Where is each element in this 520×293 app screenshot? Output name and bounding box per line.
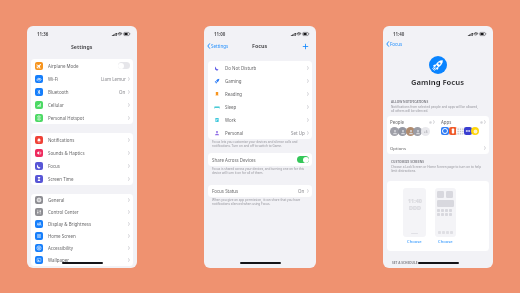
staticText: Airplane Mode (48, 63, 79, 69)
button[interactable]: Bluetooth (31, 85, 133, 98)
staticText: Gaming Focus (411, 77, 465, 87)
button[interactable]: Cellular (31, 98, 133, 111)
staticText: Notifications from selected people and a… (391, 105, 482, 113)
button[interactable]: Focus (31, 159, 133, 172)
staticText: Personal Hotspot (48, 115, 85, 121)
staticText: 11:40 (408, 197, 422, 204)
staticText: Accessibility (48, 245, 74, 251)
staticText: Personal (225, 130, 244, 136)
staticText: People (390, 119, 405, 125)
button[interactable]: Notifications (31, 133, 133, 146)
staticText: +6 (424, 130, 428, 134)
staticText: Set Up (291, 130, 305, 136)
staticText: ALLOW NOTIFICATIONS (391, 100, 429, 104)
staticText: Gaming (225, 78, 242, 84)
staticText: SET A SCHEDULE (392, 261, 418, 265)
staticText: Reading (225, 91, 243, 97)
button[interactable]: Choose (435, 188, 456, 245)
staticText: Apps (441, 119, 452, 125)
button[interactable]: Home Screen (31, 230, 133, 242)
staticText: Choose (407, 239, 422, 245)
button[interactable]: Personal (208, 126, 312, 139)
staticText: Notifications (48, 137, 75, 143)
button[interactable]: Screen Time (31, 172, 133, 185)
staticText: Focus (252, 42, 268, 49)
button[interactable]: Sleep (208, 100, 312, 113)
button[interactable]: Do Not Disturb (208, 61, 312, 74)
button[interactable]: Toggle (297, 156, 309, 163)
button[interactable]: Wi-Fi (31, 72, 133, 85)
button[interactable]: Display & Brightness (31, 218, 133, 230)
button[interactable]: Control Center (31, 206, 133, 218)
staticText: Choose a Lock Screen or Home Screen page… (391, 165, 482, 173)
staticText: Settings (211, 43, 229, 49)
staticText: Work (225, 117, 236, 123)
staticText: Settings (71, 43, 93, 50)
button[interactable]: Focus (386, 41, 403, 47)
staticText: Share Across Devices (212, 157, 256, 163)
staticText: Bluetooth (48, 89, 69, 95)
button[interactable]: Apps (438, 116, 489, 135)
staticText: 11:40 (393, 31, 405, 37)
staticText: Screen Time (48, 176, 74, 182)
button[interactable]: 11:40 (403, 188, 426, 245)
button[interactable]: Toggle (118, 62, 130, 69)
staticText: Control Center (48, 209, 79, 215)
button[interactable]: Reading (208, 87, 312, 100)
staticText: 11:36 (37, 31, 49, 37)
button[interactable]: Focus Status (208, 185, 312, 197)
staticText: Liam Lemur (101, 76, 126, 82)
staticText: Focus Status (212, 188, 239, 194)
staticText: Focus lets you customize your devices an… (212, 140, 309, 148)
button[interactable]: Add focus (301, 42, 309, 50)
button[interactable]: Gaming (208, 74, 312, 87)
button[interactable]: Share Across Devices (208, 153, 312, 166)
button[interactable]: Airplane Mode (31, 59, 133, 72)
staticText: Wallpaper (48, 257, 70, 263)
staticText: Cellular (48, 102, 64, 108)
staticText: On (298, 188, 305, 194)
button[interactable]: People (387, 116, 438, 136)
button[interactable]: Personal Hotspot (31, 111, 133, 124)
staticText: General (48, 197, 65, 203)
staticText: Sleep (225, 104, 237, 110)
button[interactable]: Settings (207, 43, 229, 49)
button[interactable]: Accessibility (31, 242, 133, 254)
staticText: Sounds & Haptics (48, 150, 85, 156)
staticText: Focus (390, 41, 403, 47)
staticText: Options (390, 145, 406, 151)
staticText: Do Not Disturb (225, 65, 257, 71)
staticText: 11:00 (214, 31, 226, 37)
button[interactable]: General (31, 194, 133, 206)
button[interactable]: Work (208, 113, 312, 126)
staticText: Home Screen (48, 233, 76, 239)
staticText: Choose (438, 239, 453, 245)
staticText: Wi-Fi (48, 76, 59, 82)
staticText: DDD (409, 204, 421, 211)
staticText: Focus (48, 163, 60, 169)
button[interactable]: Gaming Focus icon (429, 56, 447, 74)
staticText: On (119, 89, 126, 95)
button[interactable]: Options (387, 141, 489, 154)
staticText: When you give an app permission, it can … (212, 198, 309, 206)
staticText: Focus is shared across your devices, and… (212, 167, 309, 175)
staticText: CUSTOMIZE SCREENS (391, 160, 425, 164)
staticText: Display & Brightness (48, 221, 92, 227)
button[interactable]: Wallpaper (31, 254, 133, 266)
button[interactable]: Sounds & Haptics (31, 146, 133, 159)
